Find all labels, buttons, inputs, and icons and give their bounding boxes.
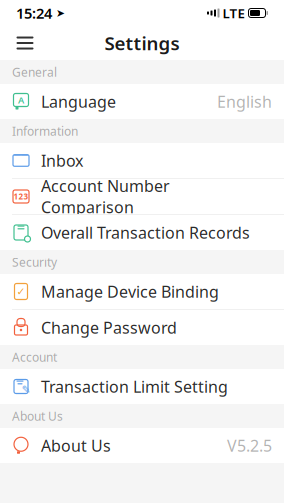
staticText: Account Number Comparison [41, 175, 170, 218]
button[interactable]: Inbox [0, 143, 284, 179]
button[interactable]: Overall Transaction Records [0, 215, 284, 250]
button[interactable]: Change Password [0, 310, 284, 345]
staticText: General [12, 64, 57, 80]
button[interactable]: A [0, 84, 284, 119]
staticText: English [217, 91, 272, 112]
staticText: 15:24 [16, 3, 52, 23]
staticText: LTE [222, 4, 244, 22]
staticText: A [18, 94, 24, 106]
staticText: Account [12, 349, 57, 365]
staticText: Security [12, 254, 57, 270]
staticText: ✎ [21, 383, 30, 395]
button[interactable]: 123 [0, 179, 284, 215]
staticText: 123 [13, 191, 28, 202]
staticText: V5.2.5 [227, 435, 272, 456]
button[interactable]: ✓ [0, 274, 284, 310]
staticText: Transaction Limit Setting [41, 376, 228, 397]
staticText: ➤ [52, 7, 65, 19]
button[interactable]: ✎ [0, 369, 284, 404]
staticText: Language [41, 91, 116, 112]
staticText: Change Password [41, 317, 177, 338]
staticText: Information [12, 123, 78, 139]
button[interactable]: Menu [6, 26, 44, 60]
staticText: Settings [104, 31, 179, 55]
button[interactable]: About Us [0, 428, 284, 463]
staticText: Manage Device Binding [41, 281, 219, 302]
staticText: Inbox [41, 150, 83, 171]
staticText: About Us [41, 435, 111, 456]
staticText: ✓ [16, 285, 25, 297]
staticText: Overall Transaction Records [41, 222, 250, 243]
staticText: About Us [12, 408, 63, 424]
